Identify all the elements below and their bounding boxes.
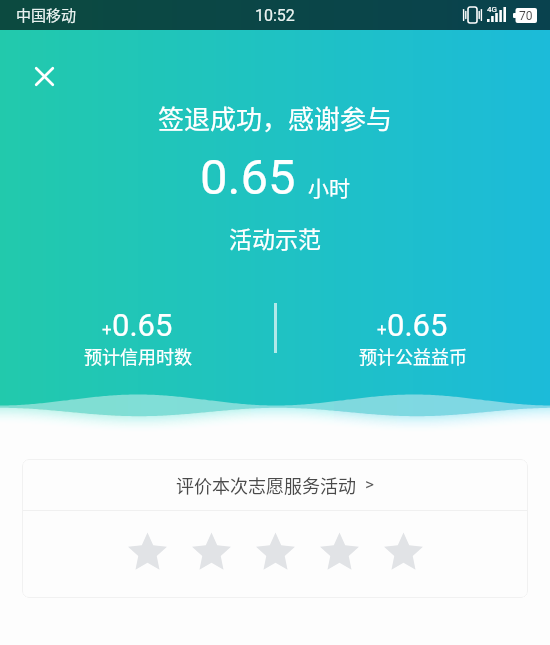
staticText: 预计公益益币: [359, 343, 467, 369]
staticText: 10:52: [255, 6, 295, 25]
button[interactable]: Rate 2 stars: [179, 522, 243, 582]
staticText: 预计信用时数: [84, 343, 192, 369]
button[interactable]: 评价本次志愿服务活动: [22, 459, 528, 510]
staticText: 0.65: [112, 307, 173, 343]
staticText: +: [377, 319, 387, 339]
button[interactable]: Rate 5 stars: [371, 522, 435, 582]
staticText: 4G: [487, 5, 497, 14]
staticText: 中国移动: [16, 4, 77, 26]
staticText: +: [102, 319, 112, 339]
staticText: >: [365, 474, 374, 494]
staticText: 活动示范: [0, 221, 550, 254]
button[interactable]: Rate 4 stars: [307, 522, 371, 582]
staticText: 小时: [308, 172, 350, 202]
staticText: 70: [519, 9, 533, 23]
button[interactable]: Rate 1 stars: [115, 522, 179, 582]
button[interactable]: Rate 3 stars: [243, 522, 307, 582]
staticText: 0.65: [200, 149, 296, 206]
staticText: 签退成功，感谢参与: [0, 99, 550, 137]
button[interactable]: Close: [27, 59, 61, 93]
staticText: 0.65: [387, 307, 448, 343]
staticText: 评价本次志愿服务活动: [176, 472, 356, 498]
